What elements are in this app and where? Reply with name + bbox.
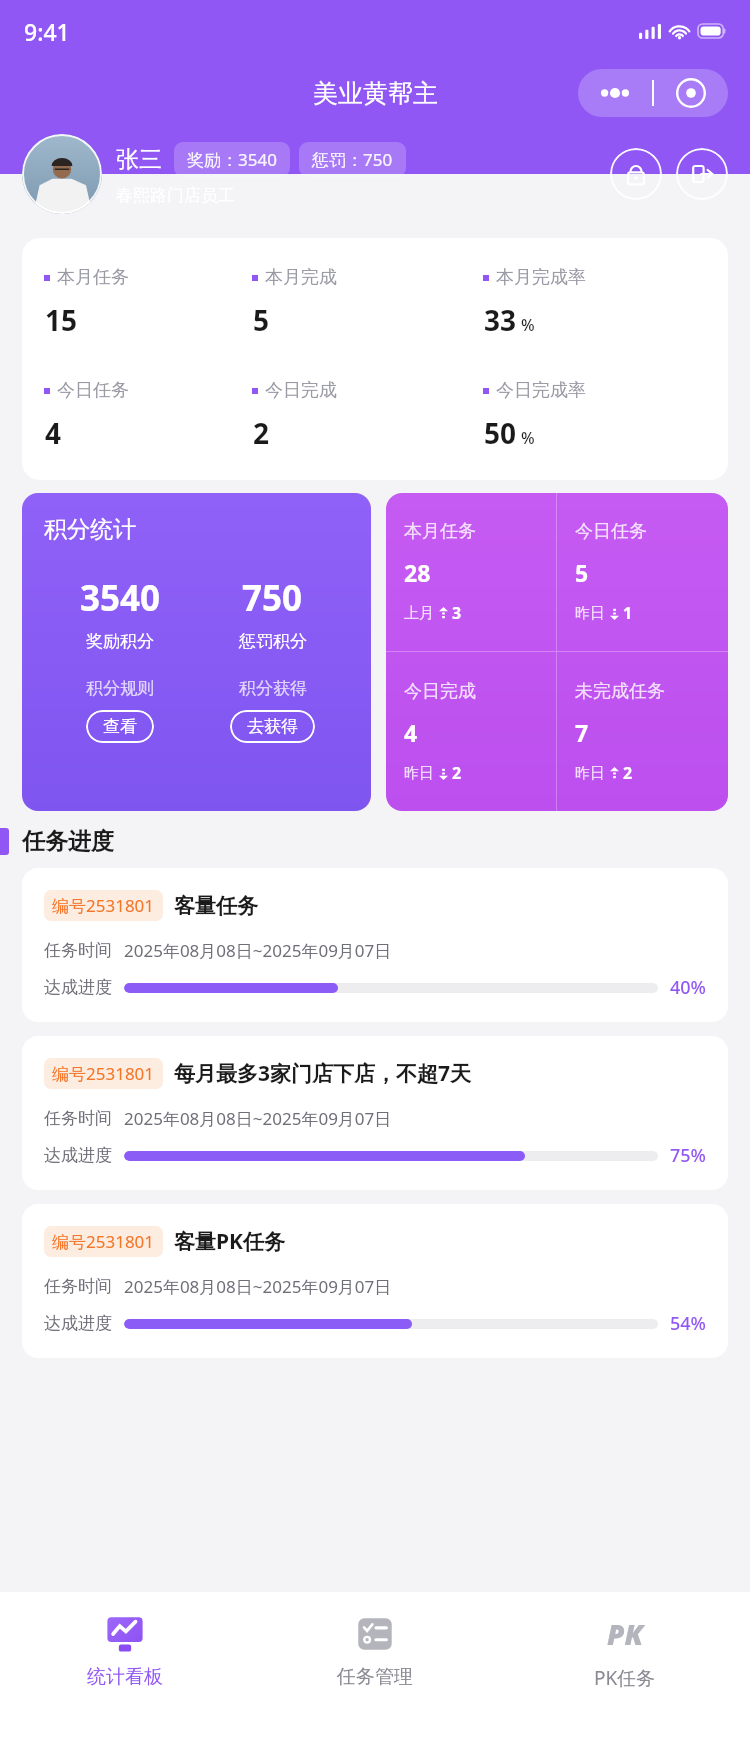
staticText: 任务管理 <box>337 1665 413 1689</box>
staticText: 编号2531801 <box>52 1230 155 1253</box>
button[interactable]: Log out <box>676 148 728 200</box>
staticText: 今日任务 <box>57 379 129 402</box>
staticText: 本月任务 <box>404 520 476 543</box>
staticText: 750 <box>242 574 303 622</box>
staticText: 每月最多3家门店下店，不超7天 <box>174 1059 472 1088</box>
staticText: 任务时间 <box>44 940 112 961</box>
staticText: 2 <box>253 414 270 452</box>
staticText: 50 <box>484 414 517 452</box>
button[interactable]: 编号2531801 <box>22 868 728 1022</box>
staticText: 积分规则 <box>86 678 154 699</box>
staticText: 2025年08月08日~2025年09月07日 <box>124 939 392 962</box>
staticText: 积分获得 <box>239 678 307 699</box>
staticText: 今日完成 <box>265 379 337 402</box>
staticText: PK <box>607 1615 644 1653</box>
button[interactable]: 去获得 <box>230 710 315 743</box>
button[interactable]: 查看 <box>86 710 154 743</box>
staticText: 惩罚：750 <box>312 148 393 171</box>
staticText: 3540 <box>80 574 161 622</box>
button[interactable]: 统计看板 <box>0 1612 250 1689</box>
staticText: PK任务 <box>594 1665 656 1691</box>
staticText: 奖励：3540 <box>187 148 277 171</box>
staticText: 上月 <box>404 604 434 623</box>
staticText: 4 <box>45 414 62 452</box>
staticText: 客量任务 <box>174 893 258 919</box>
staticText: 33 <box>484 301 517 339</box>
staticText: 今日完成 <box>404 680 476 703</box>
staticText: 75% <box>670 1143 706 1168</box>
staticText: 达成进度 <box>44 1145 112 1166</box>
staticText: 春熙路门店员工 <box>116 185 235 206</box>
staticText: 7 <box>575 717 589 748</box>
button[interactable]: 编号2531801 <box>22 1204 728 1358</box>
staticText: 今日完成率 <box>496 379 586 402</box>
staticText: 1 <box>623 602 633 624</box>
staticText: 张三 <box>116 145 162 174</box>
staticText: 本月任务 <box>57 266 129 289</box>
staticText: 昨日 <box>575 604 605 623</box>
staticText: 2 <box>623 762 633 784</box>
staticText: 客量PK任务 <box>174 1227 285 1256</box>
staticText: 4 <box>404 717 418 748</box>
staticText: 2025年08月08日~2025年09月07日 <box>124 1107 392 1130</box>
staticText: 未完成任务 <box>575 680 665 703</box>
staticText: 惩罚积分 <box>239 631 307 652</box>
staticText: 2 <box>452 762 462 784</box>
staticText: 5 <box>253 301 270 339</box>
staticText: 任务进度 <box>22 827 114 856</box>
button[interactable]: 编号2531801 <box>22 1036 728 1190</box>
staticText: 任务时间 <box>44 1108 112 1129</box>
staticText: 15 <box>45 301 78 339</box>
button[interactable]: PK <box>500 1612 750 1691</box>
staticText: 去获得 <box>247 716 298 737</box>
staticText: 美业黄帮主 <box>313 78 438 109</box>
staticText: 昨日 <box>404 764 434 783</box>
staticText: 达成进度 <box>44 1313 112 1334</box>
button[interactable]: 任务管理 <box>250 1612 500 1689</box>
staticText: 达成进度 <box>44 977 112 998</box>
staticText: 28 <box>404 557 431 588</box>
button[interactable]: Profile photo <box>22 134 102 214</box>
staticText: 积分统计 <box>44 515 136 544</box>
button[interactable]: More options <box>578 69 652 117</box>
staticText: 40% <box>670 975 706 1000</box>
staticText: % <box>521 427 535 449</box>
button[interactable]: Lock <box>610 148 662 200</box>
staticText: 2025年08月08日~2025年09月07日 <box>124 1275 392 1298</box>
staticText: 编号2531801 <box>52 894 155 917</box>
staticText: 任务时间 <box>44 1276 112 1297</box>
button[interactable]: Target <box>654 69 728 117</box>
staticText: 本月完成 <box>265 266 337 289</box>
staticText: 查看 <box>103 716 137 737</box>
staticText: 54% <box>670 1311 706 1336</box>
staticText: 昨日 <box>575 764 605 783</box>
staticText: 本月完成率 <box>496 266 586 289</box>
staticText: 3 <box>452 602 462 624</box>
staticText: 5 <box>575 557 589 588</box>
staticText: 奖励积分 <box>86 631 154 652</box>
staticText: 统计看板 <box>87 1665 163 1689</box>
staticText: % <box>521 314 535 336</box>
staticText: 编号2531801 <box>52 1062 155 1085</box>
staticText: 9:41 <box>24 16 70 47</box>
staticText: 今日任务 <box>575 520 647 543</box>
